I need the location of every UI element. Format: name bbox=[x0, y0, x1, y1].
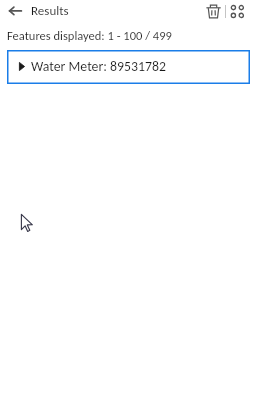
button[interactable]: Water Meter: 89531782 bbox=[7, 50, 250, 84]
staticText: Features displayed: 1 - 100 / 499 bbox=[7, 28, 172, 43]
staticText: Results bbox=[31, 3, 69, 19]
staticText: Water Meter: 89531782 bbox=[31, 58, 167, 75]
button[interactable]: Back bbox=[4, 0, 28, 22]
button[interactable]: View options bbox=[228, 0, 248, 22]
button[interactable]: Delete bbox=[203, 0, 225, 22]
